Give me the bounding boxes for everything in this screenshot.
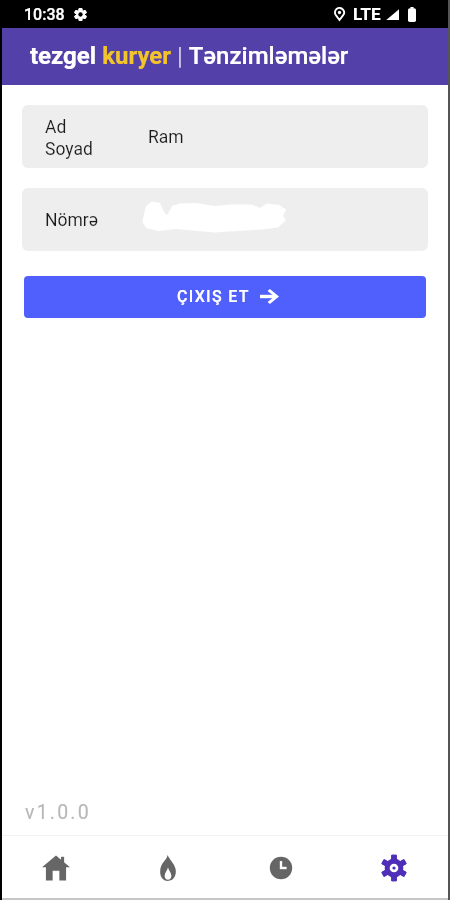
button[interactable]: History xyxy=(224,836,337,900)
staticText: v1.0.0 xyxy=(25,801,91,824)
button[interactable]: Settings xyxy=(337,836,450,900)
staticText: Ram xyxy=(148,127,184,148)
button[interactable]: ÇIXIŞ ET xyxy=(24,276,426,318)
button[interactable]: Ad Soyad xyxy=(22,105,428,168)
staticText: LTE xyxy=(353,4,381,24)
button[interactable]: Home xyxy=(0,836,112,900)
button[interactable]: Popular xyxy=(112,836,224,900)
staticText: Nömrə xyxy=(45,210,98,231)
staticText: ÇIXIŞ ET xyxy=(177,287,250,306)
button[interactable]: Nömrə xyxy=(22,188,428,251)
staticText: 10:38 xyxy=(24,5,65,24)
staticText: Ad Soyad xyxy=(45,117,93,159)
staticText: tezgel kuryer | Tənzimləmələr xyxy=(30,42,349,70)
